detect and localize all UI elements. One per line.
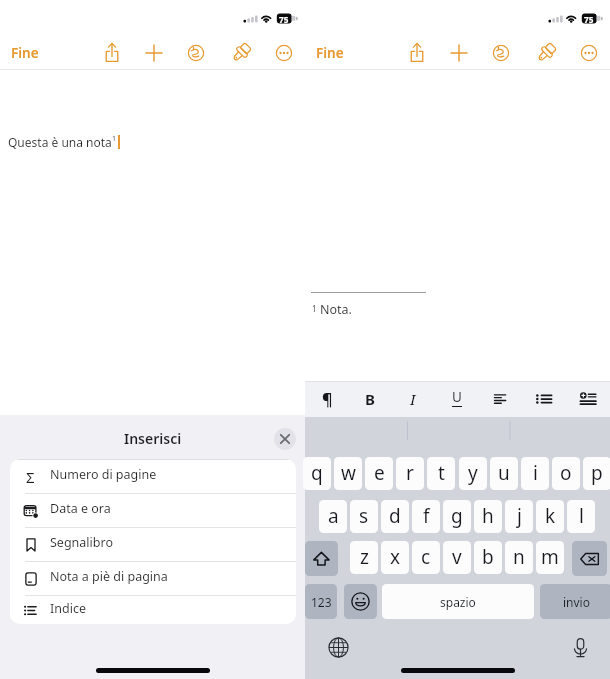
button[interactable]: j	[505, 500, 533, 533]
button[interactable]: Shift	[305, 541, 338, 576]
staticText: j	[517, 503, 522, 529]
staticText: 123	[311, 594, 332, 610]
button[interactable]: Fine	[4, 42, 46, 64]
button[interactable]: y	[459, 457, 487, 490]
staticText: f	[423, 503, 430, 529]
button[interactable]: Σ	[10, 460, 296, 493]
staticText: d	[389, 503, 401, 529]
button[interactable]: Dictate	[565, 632, 595, 662]
staticText: w	[341, 460, 356, 486]
button[interactable]: Italic	[397, 383, 429, 415]
button[interactable]: Share	[97, 38, 127, 68]
button[interactable]: e	[365, 457, 393, 490]
button[interactable]: x	[381, 541, 409, 574]
button[interactable]: l	[567, 500, 595, 533]
button[interactable]: g	[443, 500, 471, 533]
button[interactable]: v	[443, 541, 471, 574]
button[interactable]: Align	[485, 383, 517, 415]
button[interactable]: spazio	[382, 584, 534, 619]
button[interactable]: Format	[531, 38, 561, 68]
button[interactable]: Segnalibro	[10, 528, 296, 561]
button[interactable]: Share	[402, 38, 432, 68]
button[interactable]: Emoji	[344, 584, 377, 619]
button[interactable]: Undo	[181, 38, 211, 68]
button[interactable]: t	[427, 457, 455, 490]
staticText: U	[452, 388, 462, 406]
button[interactable]: o	[552, 457, 580, 490]
button[interactable]: f	[412, 500, 440, 533]
button[interactable]: b	[474, 541, 502, 574]
staticText: q	[311, 460, 323, 486]
button[interactable]: Change keyboard	[323, 632, 353, 662]
staticText: Segnalibro	[50, 534, 113, 551]
button[interactable]: d	[381, 500, 409, 533]
staticText: e	[374, 460, 385, 486]
staticText: s	[359, 503, 369, 529]
staticText: o	[560, 460, 572, 486]
staticText: 75	[584, 14, 594, 25]
button[interactable]: Paragraph	[311, 383, 343, 415]
staticText: Indice	[50, 600, 86, 617]
staticText: 75	[279, 14, 289, 25]
button[interactable]: c	[412, 541, 440, 574]
staticText: Fine	[11, 44, 39, 62]
button[interactable]: Data e ora	[10, 494, 296, 527]
staticText: x	[390, 544, 401, 570]
staticText: p	[591, 460, 603, 486]
button[interactable]: Insert list	[572, 383, 604, 415]
staticText: v	[452, 544, 462, 570]
staticText: r	[406, 460, 414, 486]
button[interactable]: Insert	[444, 38, 474, 68]
button[interactable]: Fine	[309, 42, 351, 64]
button[interactable]: i	[521, 457, 549, 490]
button[interactable]: u	[490, 457, 518, 490]
button[interactable]: invio	[540, 584, 610, 619]
staticText: 1	[112, 134, 117, 144]
button[interactable]: w	[334, 457, 362, 490]
staticText: Questa è una nota	[8, 134, 112, 150]
button[interactable]: Bold	[354, 383, 386, 415]
button[interactable]: r	[396, 457, 424, 490]
staticText: l	[579, 503, 584, 529]
staticText: a	[328, 503, 339, 529]
staticText: I	[410, 389, 416, 409]
button[interactable]: z	[350, 541, 378, 574]
button[interactable]: More	[574, 38, 604, 68]
button[interactable]: a	[319, 500, 347, 533]
button[interactable]: Nota a piè di pagina	[10, 562, 296, 595]
staticText: B	[365, 389, 375, 409]
staticText: Fine	[316, 44, 344, 62]
staticText: m	[541, 544, 559, 570]
staticText: Nota a piè di pagina	[50, 568, 168, 585]
button[interactable]: k	[536, 500, 564, 533]
button[interactable]: s	[350, 500, 378, 533]
staticText: Σ	[26, 467, 35, 487]
button[interactable]: Underline	[441, 383, 473, 415]
button[interactable]: More	[269, 38, 299, 68]
button[interactable]: Format	[226, 38, 256, 68]
button[interactable]: Insert	[139, 38, 169, 68]
button[interactable]: 123	[305, 584, 337, 619]
button[interactable]: n	[505, 541, 533, 574]
button[interactable]: m	[536, 541, 564, 574]
button[interactable]: List	[528, 383, 560, 415]
button[interactable]: Undo	[486, 38, 516, 68]
staticText: Nota.	[320, 301, 352, 318]
button[interactable]: h	[474, 500, 502, 533]
staticText: i	[533, 460, 538, 486]
staticText: ¶	[322, 388, 333, 410]
staticText: g	[451, 503, 463, 529]
staticText: Numero di pagine	[50, 466, 157, 483]
button[interactable]: q	[303, 457, 331, 490]
button[interactable]: Close	[274, 428, 296, 450]
staticText: 1	[312, 303, 317, 314]
staticText: spazio	[440, 594, 476, 610]
button[interactable]: p	[583, 457, 610, 490]
staticText: invio	[563, 594, 590, 610]
staticText: t	[438, 460, 445, 486]
staticText: c	[421, 544, 431, 570]
staticText: z	[360, 544, 369, 570]
button[interactable]: Indice	[10, 596, 296, 624]
staticText: n	[513, 544, 525, 570]
button[interactable]: Backspace	[572, 541, 607, 576]
